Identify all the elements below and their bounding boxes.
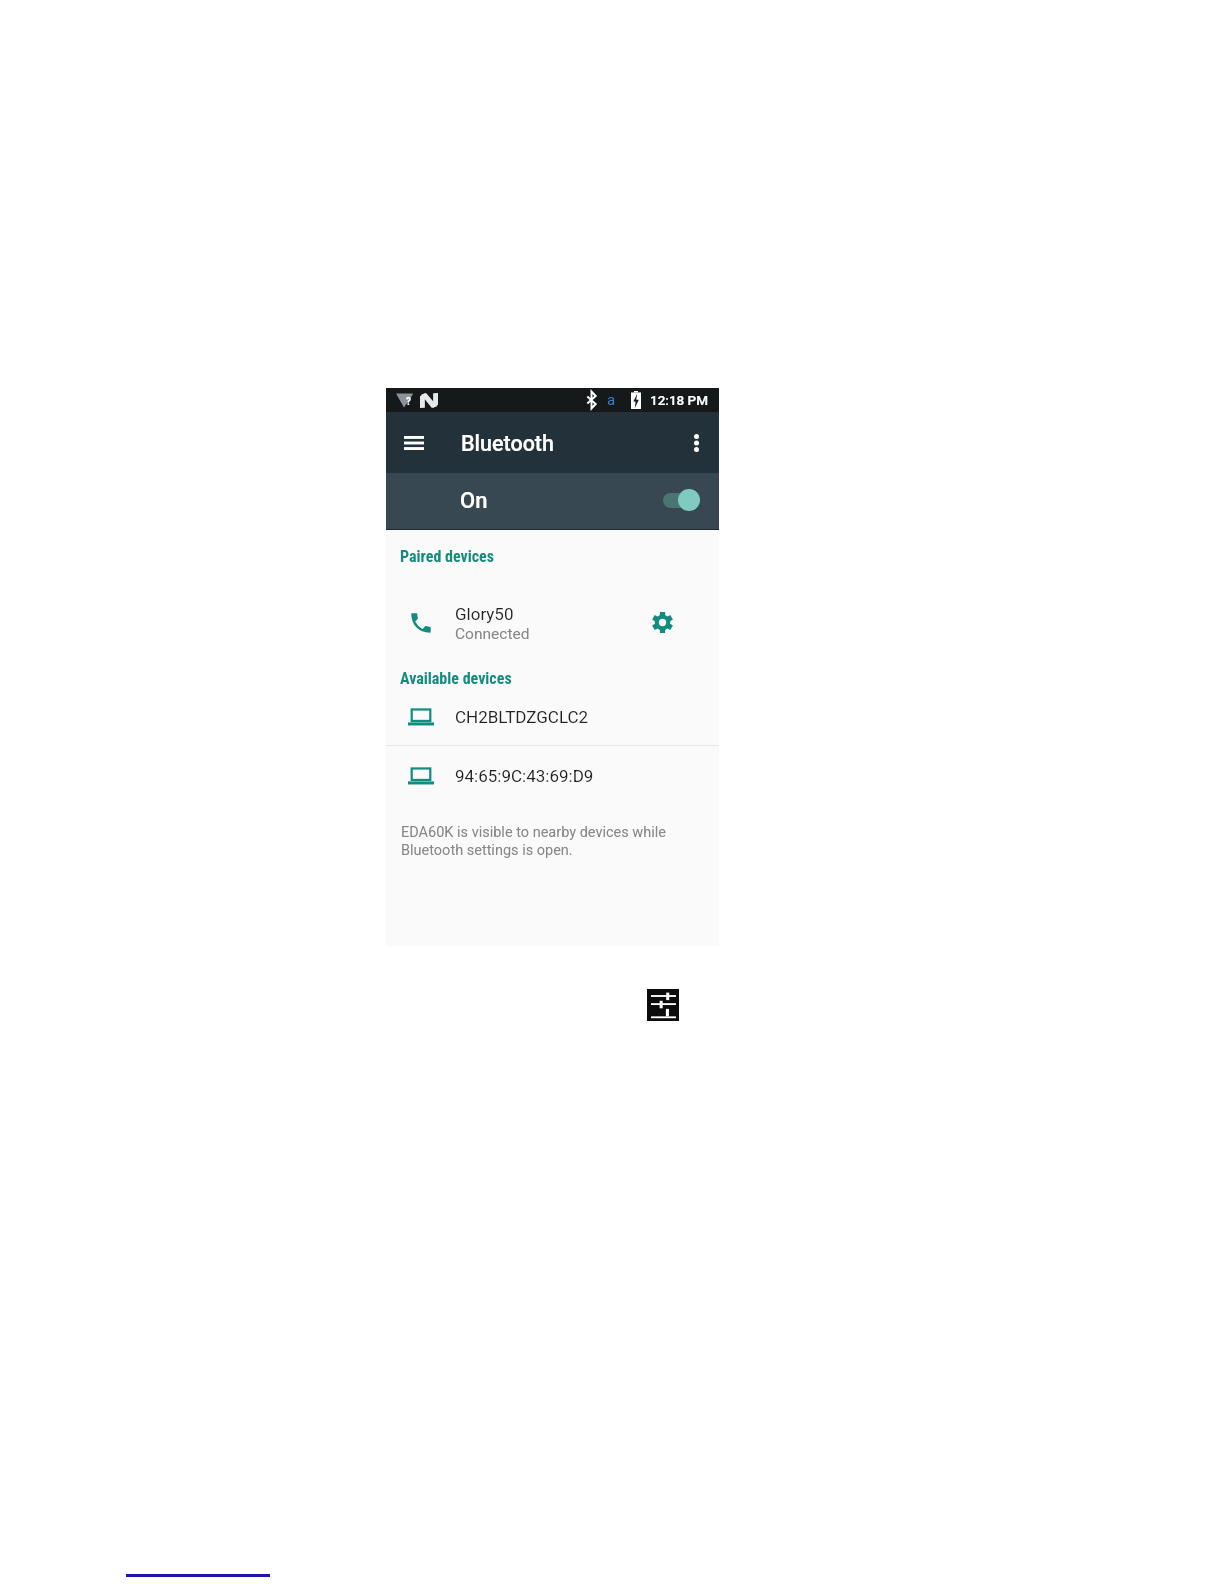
- button[interactable]: More options: [676, 423, 716, 463]
- button[interactable]: Glory50: [386, 594, 719, 648]
- button[interactable]: Device settings: [642, 602, 682, 642]
- staticText: 12:18 PM: [650, 392, 709, 408]
- staticText: Glory50: [455, 604, 514, 624]
- button[interactable]: CH2BLTDZGCLC2: [386, 700, 719, 734]
- staticText: Available devices: [400, 669, 512, 688]
- staticText: ?: [406, 396, 411, 408]
- staticText: 94:65:9C:43:69:D9: [455, 766, 594, 786]
- button[interactable]: 94:65:9C:43:69:D9: [386, 759, 719, 793]
- staticText: EDA60K is visible to nearby devices whil…: [401, 824, 666, 859]
- button[interactable]: Settings: [647, 989, 679, 1021]
- staticText: Bluetooth: [461, 431, 554, 456]
- staticText: a: [607, 391, 616, 409]
- staticText: CH2BLTDZGCLC2: [455, 707, 589, 727]
- staticText: On: [460, 488, 488, 514]
- button[interactable]: On: [386, 473, 719, 530]
- button[interactable]: Navigation menu: [391, 420, 437, 466]
- staticText: Connected: [455, 625, 530, 643]
- staticText: Paired devices: [400, 547, 494, 566]
